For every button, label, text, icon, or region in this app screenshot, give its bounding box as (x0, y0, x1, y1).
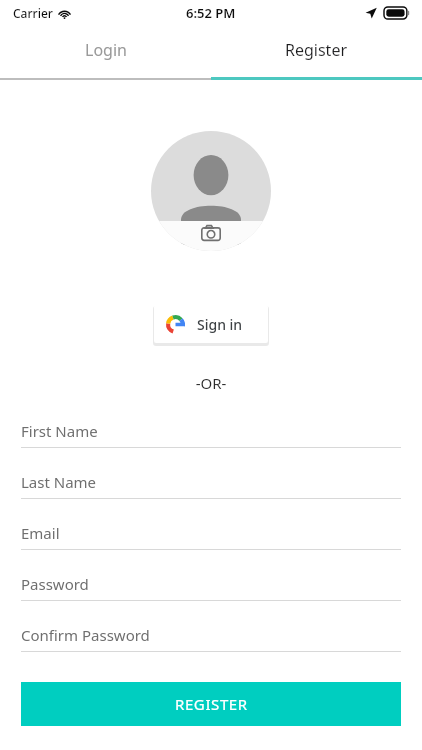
staticText: Password (21, 574, 89, 594)
button[interactable]: Change profile photo (151, 131, 271, 251)
button[interactable]: Email (21, 517, 401, 550)
button[interactable]: First Name (21, 415, 401, 448)
staticText: Carrier (13, 5, 53, 21)
staticText: Sign in (197, 315, 243, 334)
button[interactable]: Last Name (21, 466, 401, 499)
button[interactable]: REGISTER (21, 682, 401, 726)
button[interactable]: Sign in (154, 305, 268, 343)
staticText: REGISTER (175, 694, 248, 714)
staticText: Last Name (21, 472, 97, 492)
button[interactable]: Register (211, 26, 422, 80)
button[interactable]: Confirm Password (21, 619, 401, 652)
staticText: Email (21, 523, 60, 543)
button[interactable]: Login (0, 26, 211, 80)
staticText: Register (285, 39, 348, 61)
staticText: Confirm Password (21, 625, 150, 645)
staticText: -OR- (0, 373, 422, 393)
staticText: First Name (21, 421, 98, 441)
button[interactable]: Password (21, 568, 401, 601)
staticText: Login (85, 39, 127, 61)
staticText: 6:52 PM (186, 4, 236, 22)
